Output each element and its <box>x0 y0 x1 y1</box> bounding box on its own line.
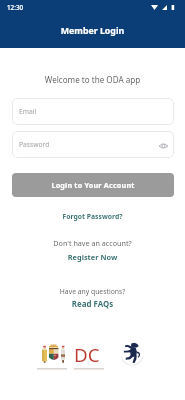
staticText: Have any questions? <box>0 287 185 296</box>
staticText: Forgot Password? <box>0 212 185 221</box>
button[interactable]: Login to Your Account <box>12 173 174 197</box>
staticText: Don't have an account? <box>0 238 185 248</box>
button[interactable]: Register Now <box>0 251 185 263</box>
button[interactable]: Email <box>12 98 174 125</box>
staticText: Member Login <box>0 25 185 37</box>
staticText: Login to Your Account <box>12 180 174 190</box>
staticText: 12:30 <box>7 3 24 12</box>
button[interactable]: Password <box>12 131 174 158</box>
staticText: Read FAQs <box>0 299 185 310</box>
staticText: Email <box>19 107 37 116</box>
button[interactable]: Read FAQs <box>0 298 185 310</box>
button[interactable]: Show password <box>154 137 172 155</box>
staticText: Password <box>19 140 50 149</box>
staticText: Register Now <box>0 252 185 262</box>
button[interactable]: Forgot Password? <box>0 210 185 223</box>
staticText: DC <box>74 342 100 362</box>
staticText: Welcome to the ODA app <box>0 74 185 85</box>
